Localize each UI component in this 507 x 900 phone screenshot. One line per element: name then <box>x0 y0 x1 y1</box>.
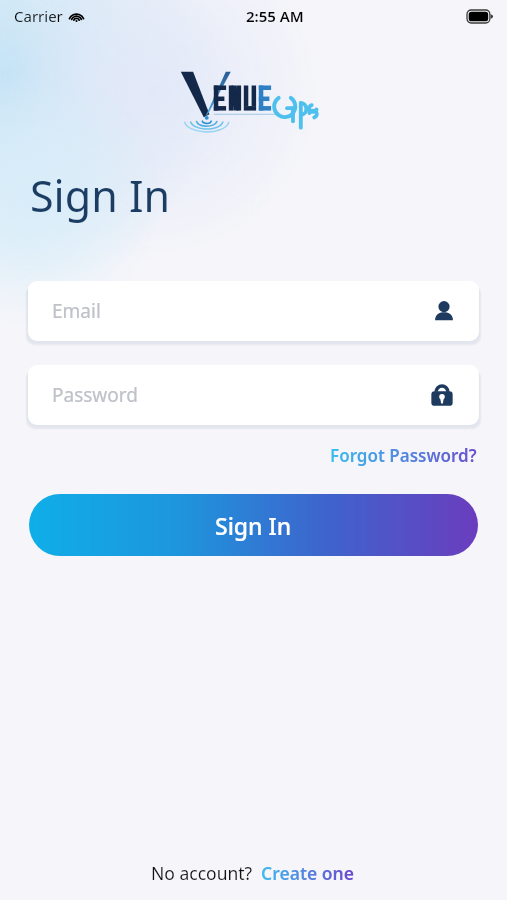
staticText: Email <box>52 298 431 324</box>
staticText: Sign In <box>215 510 292 541</box>
button[interactable]: Create one <box>259 858 356 888</box>
staticText: Carrier <box>14 6 63 26</box>
other: Email <box>431 298 457 324</box>
staticText: Password <box>52 382 427 408</box>
staticText: No account? <box>151 861 253 885</box>
staticText: Forgot Password? <box>330 444 477 467</box>
button[interactable]: Email <box>28 281 479 341</box>
staticText: Sign In <box>30 166 171 225</box>
button[interactable]: Password <box>28 365 479 425</box>
staticText: Create one <box>261 861 354 885</box>
other: Password <box>427 380 457 410</box>
staticText: 2:55 AM <box>246 6 304 26</box>
button[interactable]: Forgot Password? <box>328 441 479 470</box>
button[interactable]: Sign In <box>29 494 478 556</box>
